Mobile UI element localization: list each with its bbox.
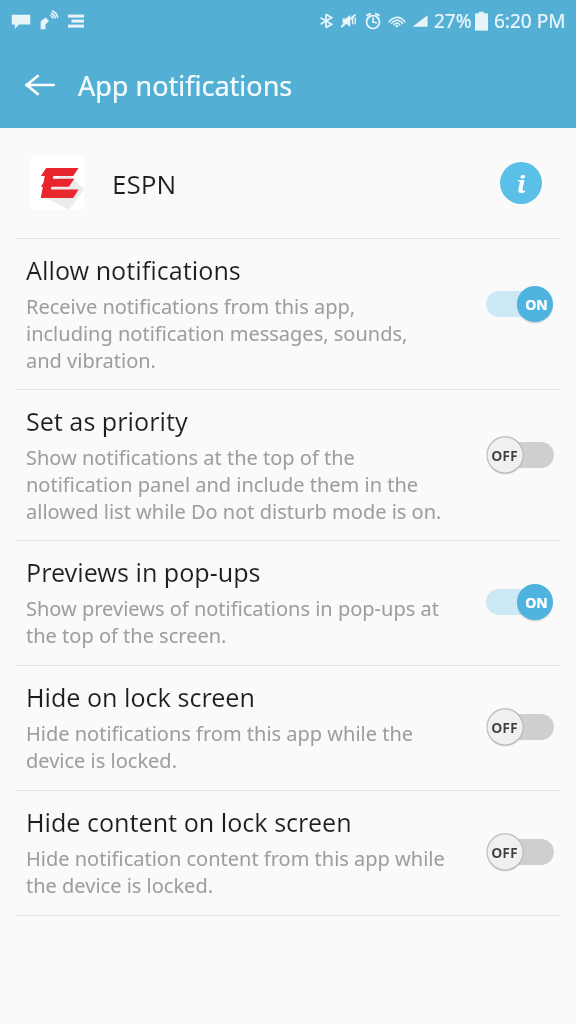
button[interactable]: Set as priority	[0, 390, 576, 540]
button[interactable]: Hide on lock screen, off	[486, 706, 554, 748]
button[interactable]: Back	[14, 59, 66, 111]
staticText: Set as priority	[26, 404, 188, 438]
staticText: allowed list while Do not disturb mode i…	[26, 498, 442, 525]
staticText: including notification messages, sounds,	[26, 320, 408, 347]
staticText: App notifications	[78, 67, 293, 104]
staticText: i	[517, 167, 526, 200]
staticText: 6:20 PM	[494, 8, 566, 34]
staticText: Hide notifications from this app while t…	[26, 720, 414, 747]
button[interactable]: Previews in pop-ups	[0, 541, 576, 665]
staticText: 27%	[434, 8, 472, 34]
staticText: OFF	[491, 718, 518, 737]
button[interactable]: Allow notifications	[0, 239, 576, 389]
staticText: ON	[525, 295, 548, 314]
staticText: Hide on lock screen	[26, 680, 255, 714]
staticText: Previews in pop-ups	[26, 555, 261, 589]
button[interactable]: Allow notifications, on	[486, 283, 554, 325]
button[interactable]: Previews in pop-ups, on	[486, 581, 554, 623]
staticText: Show notifications at the top of the	[26, 444, 355, 471]
staticText: OFF	[491, 843, 518, 862]
button[interactable]: Set as priority, off	[486, 434, 554, 476]
staticText: Show previews of notifications in pop-up…	[26, 595, 439, 622]
staticText: the top of the screen.	[26, 622, 227, 649]
staticText: notification panel and include them in t…	[26, 471, 419, 498]
staticText: ESPN	[112, 166, 177, 201]
staticText: Allow notifications	[26, 253, 241, 287]
button[interactable]: App info	[499, 161, 543, 205]
button[interactable]: Hide on lock screen	[0, 666, 576, 790]
staticText: Hide content on lock screen	[26, 805, 352, 839]
button[interactable]: Hide content on lock screen	[0, 791, 576, 915]
staticText: Hide notification content from this app …	[26, 845, 445, 872]
staticText: OFF	[491, 446, 518, 465]
staticText: device is locked.	[26, 747, 177, 774]
button[interactable]: ESPN	[0, 128, 576, 238]
staticText: and vibration.	[26, 347, 156, 374]
staticText: the device is locked.	[26, 872, 214, 899]
button[interactable]: Hide content on lock screen, off	[486, 831, 554, 873]
staticText: ON	[525, 593, 548, 612]
staticText: Receive notifications from this app,	[26, 293, 356, 320]
